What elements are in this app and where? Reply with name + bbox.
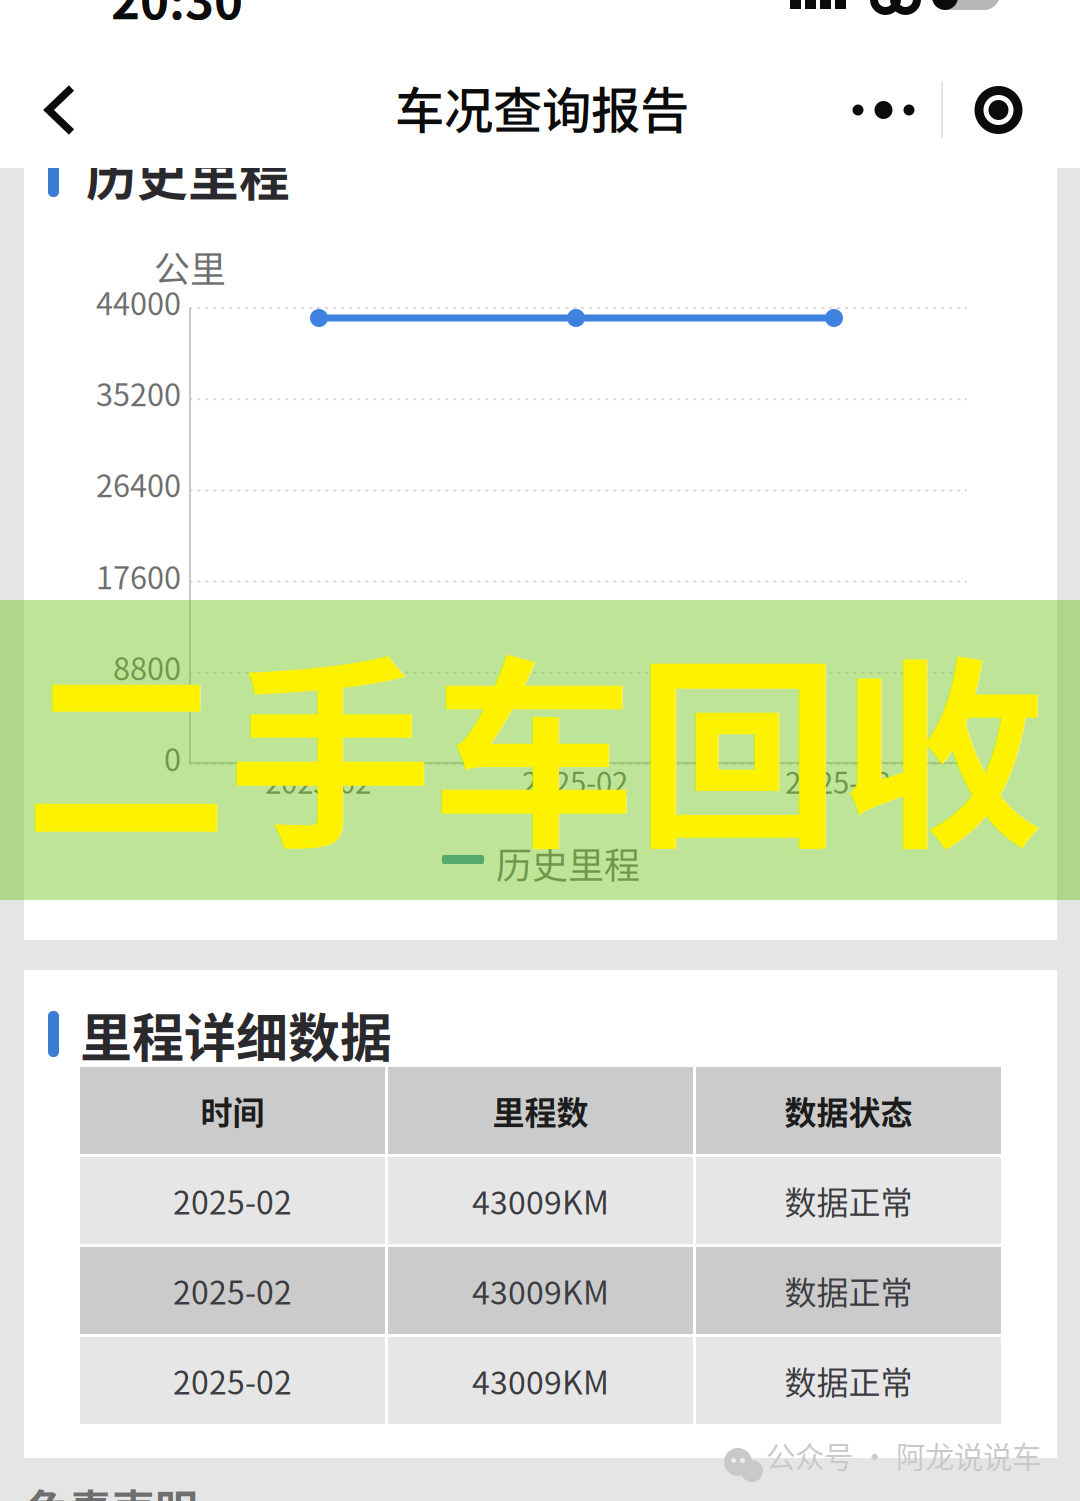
staticText: 数据正常 [784, 1177, 912, 1224]
staticText: 35200 [96, 371, 181, 415]
staticText: 公众号 · 阿龙说说车 [766, 1434, 1041, 1476]
staticText: 时间 [200, 1087, 264, 1134]
staticText: 里程详细数据 [80, 997, 392, 1072]
staticText: 44000 [96, 280, 181, 324]
staticText: 2025-02 [785, 760, 891, 802]
staticText: 数据正常 [784, 1267, 912, 1314]
staticText: 2025-02 [173, 1357, 292, 1404]
staticText: 2025-02 [173, 1177, 292, 1224]
staticText: 车况查询报告 [395, 71, 689, 143]
staticText: 2025-02 [265, 760, 371, 802]
staticText: 43009KM [472, 1357, 609, 1404]
button[interactable]: More options [826, 67, 941, 153]
staticText: 20:30 [111, 0, 243, 33]
staticText: 26400 [96, 462, 181, 506]
button[interactable]: Close mini program [941, 67, 1056, 153]
button[interactable]: Back [8, 55, 112, 165]
staticText: 2025-02 [522, 760, 628, 802]
staticText: 二手车回收 [24, 594, 1044, 889]
staticText: 历史里程 [86, 137, 290, 210]
staticText: 17600 [96, 554, 181, 598]
staticText: 43009KM [472, 1177, 609, 1224]
staticText: 43009KM [472, 1267, 609, 1314]
staticText: 0 [164, 736, 181, 780]
staticText: 2025-02 [173, 1267, 292, 1314]
staticText: 历史里程 [496, 837, 640, 889]
staticText: 里程数 [492, 1087, 588, 1134]
staticText: 数据正常 [784, 1357, 912, 1404]
staticText: 数据状态 [784, 1087, 912, 1134]
staticText: 公里 [154, 241, 226, 293]
staticText: 8800 [113, 645, 181, 689]
staticText: 免责声明 [26, 1477, 198, 1501]
